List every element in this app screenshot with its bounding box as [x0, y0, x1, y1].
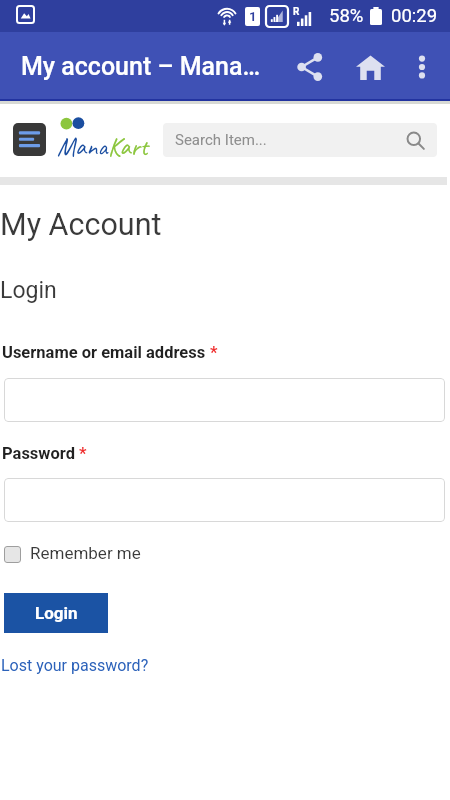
button[interactable] — [4, 478, 445, 522]
button[interactable]: Search Item... — [163, 123, 437, 157]
staticText: * — [79, 444, 87, 463]
staticText: 1 — [249, 9, 257, 24]
staticText: 58% — [329, 5, 364, 27]
button[interactable] — [4, 378, 445, 422]
button[interactable]: Login — [4, 593, 108, 633]
staticText: 00:29 — [391, 5, 438, 27]
button[interactable]: Remember me — [4, 543, 141, 563]
staticText: * — [210, 343, 218, 362]
button[interactable]: Home — [348, 45, 392, 89]
staticText: R — [293, 6, 300, 18]
button[interactable]: Menu — [13, 123, 46, 156]
staticText: My Account — [0, 207, 162, 243]
staticText: My account – Mana… — [21, 52, 261, 81]
staticText: Mana — [57, 131, 108, 163]
staticText: Username or email address — [2, 343, 206, 362]
staticText: Search Item... — [175, 131, 267, 149]
staticText: Remember me — [30, 543, 141, 563]
staticText: Login — [35, 603, 78, 623]
staticText: Login — [0, 277, 57, 304]
button[interactable]: More options — [400, 45, 444, 89]
button[interactable]: Lost your password? — [1, 656, 149, 675]
staticText: Kart — [108, 131, 148, 163]
staticText: Password — [2, 444, 75, 463]
button[interactable]: Share — [288, 45, 332, 89]
